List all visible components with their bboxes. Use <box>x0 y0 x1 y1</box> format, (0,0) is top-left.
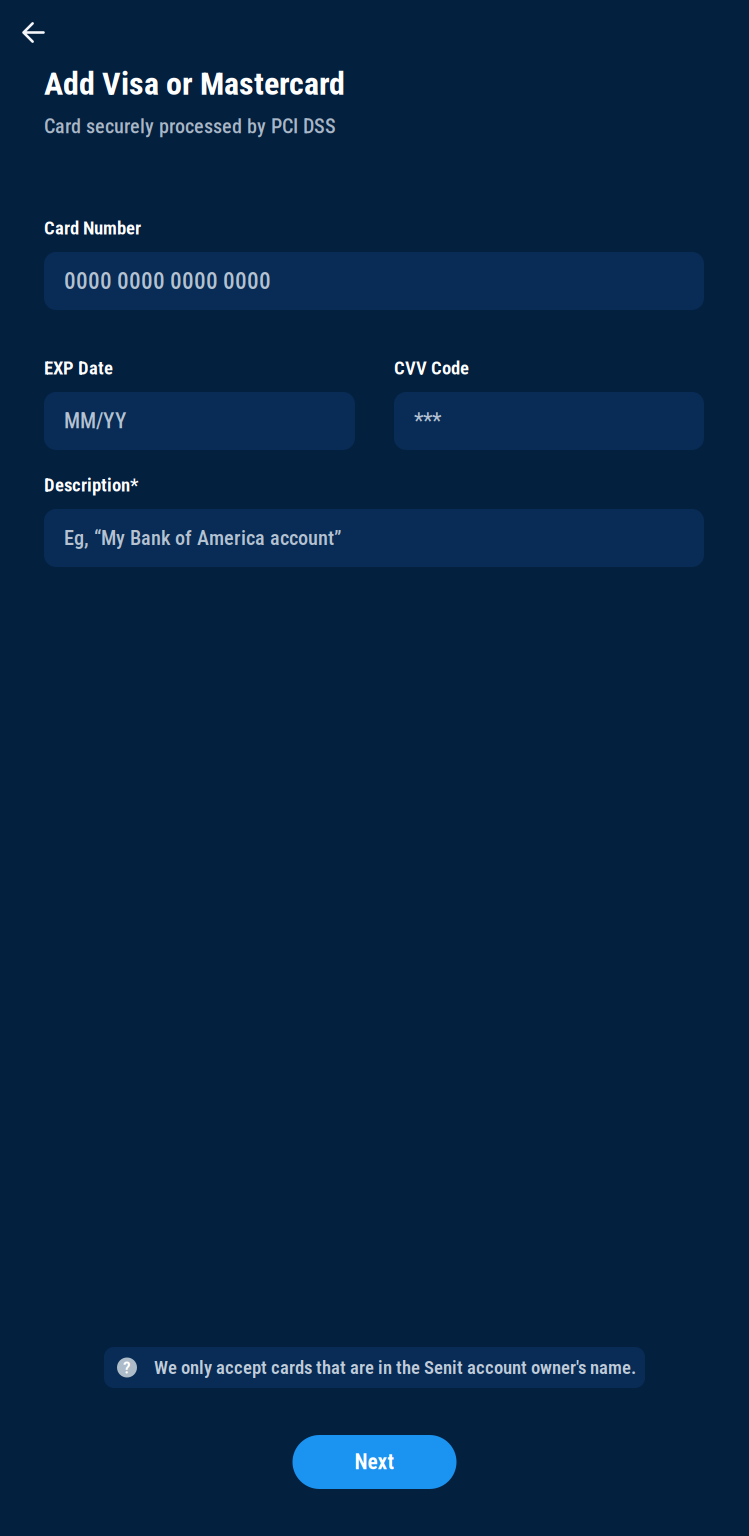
staticText: CVV Code <box>394 357 469 379</box>
staticText: Add Visa or Mastercard <box>44 65 345 102</box>
staticText: EXP Date <box>44 357 113 379</box>
button[interactable]: Eg, “My Bank of America account” <box>44 509 704 567</box>
staticText: MM/YY <box>64 408 126 433</box>
staticText: Card Number <box>44 217 141 239</box>
button[interactable]: MM/YY <box>44 392 355 450</box>
staticText: Next <box>354 1449 394 1474</box>
button[interactable]: Next <box>292 1435 456 1489</box>
button[interactable]: Back <box>0 0 65 57</box>
staticText: Description* <box>44 474 138 496</box>
button[interactable]: *** <box>394 392 704 450</box>
staticText: *** <box>414 408 441 433</box>
staticText: ? <box>123 1357 131 1378</box>
staticText: 0000 0000 0000 0000 <box>64 267 271 295</box>
staticText: We only accept cards that are in the Sen… <box>154 1357 636 1378</box>
button[interactable]: 0000 0000 0000 0000 <box>44 252 704 310</box>
staticText: Card securely processed by PCI DSS <box>44 114 336 138</box>
staticText: Eg, “My Bank of America account” <box>64 526 342 550</box>
button[interactable]: ? <box>104 1347 645 1388</box>
